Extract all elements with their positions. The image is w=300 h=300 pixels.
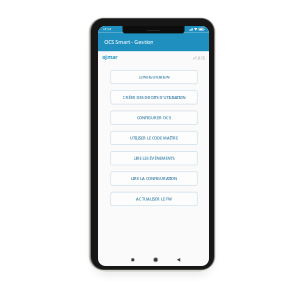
staticText: LIRE LES ÉVÉNEMENTS — [133, 156, 174, 161]
button[interactable]: CONFIGURER OCS — [111, 111, 197, 124]
button[interactable]: CRÉER DES DROITS D'UTILISATION — [111, 91, 197, 104]
button[interactable]: CONFIGURATION — [111, 70, 197, 84]
staticText: LIRE LA CONFIGURATION — [131, 176, 177, 181]
staticText: ACTUALISER LE FW — [136, 196, 172, 201]
button[interactable]: Recent apps — [127, 255, 138, 265]
button[interactable]: LIRE LA CONFIGURATION — [111, 172, 197, 185]
staticText: CRÉER DES DROITS D'UTILISATION — [122, 95, 185, 100]
button[interactable]: Back — [173, 255, 184, 265]
staticText: CONFIGURATION — [138, 74, 169, 80]
staticText: CONFIGURER OCS — [137, 115, 171, 120]
staticText: v1.0.15 — [193, 55, 205, 60]
button[interactable]: Home — [150, 255, 161, 265]
staticText: UTILISER LE CODE MAÎTRE — [130, 135, 178, 141]
button[interactable]: UTILISER LE CODE MAÎTRE — [111, 131, 197, 145]
staticText: 14:58 — [102, 27, 111, 31]
staticText: OCS Smart - Gestion — [104, 38, 153, 45]
button[interactable]: ACTUALISER LE FW — [111, 192, 197, 206]
staticText: ojmar — [102, 53, 117, 60]
button[interactable]: LIRE LES ÉVÉNEMENTS — [111, 151, 197, 165]
